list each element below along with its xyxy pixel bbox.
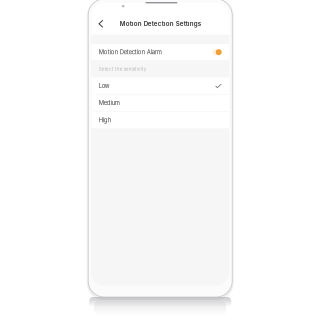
button[interactable]: Back — [94, 17, 108, 31]
button[interactable]: Motion Detection Alarm — [91, 44, 229, 60]
staticText: Low — [99, 82, 110, 89]
button[interactable]: Low — [91, 77, 229, 94]
staticText: Motion Detection Alarm — [99, 49, 162, 56]
staticText: High — [99, 116, 111, 124]
button[interactable]: Medium — [91, 95, 229, 111]
staticText: Medium — [99, 99, 120, 106]
button[interactable]: High — [91, 112, 229, 128]
staticText: Motion Detection Settings — [120, 20, 201, 27]
staticText: Select the sensitivity — [99, 66, 147, 72]
